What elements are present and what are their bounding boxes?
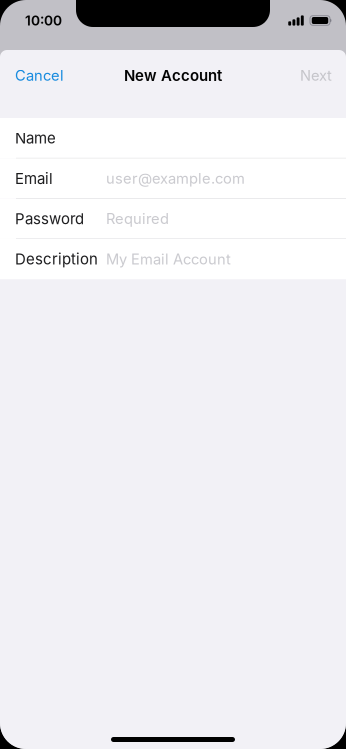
button[interactable]: Name <box>0 118 346 158</box>
staticText: New Account <box>124 66 222 85</box>
button[interactable]: Description <box>0 239 346 279</box>
staticText: My Email Account <box>106 250 231 268</box>
staticText: Name <box>15 129 56 147</box>
staticText: Required <box>106 210 169 228</box>
staticText: user@example.com <box>106 170 245 187</box>
staticText: Email <box>15 169 53 187</box>
staticText: Cancel <box>15 67 64 84</box>
staticText: Next <box>300 67 332 84</box>
staticText: Password <box>15 210 84 228</box>
button[interactable]: Password <box>0 199 346 239</box>
staticText: Description <box>15 250 98 268</box>
button[interactable]: Email <box>0 158 346 199</box>
button[interactable]: Next <box>286 53 346 97</box>
staticText: 10:00 <box>25 12 62 29</box>
button[interactable]: Cancel <box>0 53 79 97</box>
